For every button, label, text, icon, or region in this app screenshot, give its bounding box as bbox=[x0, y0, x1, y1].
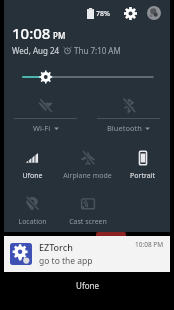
button[interactable]: Hidden notification bbox=[8, 232, 166, 236]
staticText: Wi-Fi bbox=[33, 123, 51, 133]
button[interactable]: Ufone bbox=[4, 144, 60, 188]
button[interactable]: Airplane mode bbox=[60, 144, 115, 188]
button[interactable]: Cast screen bbox=[60, 190, 115, 232]
staticText: Location bbox=[18, 217, 47, 227]
button[interactable]: Settings bbox=[120, 3, 140, 23]
staticText: go to the app bbox=[39, 255, 93, 267]
staticText: 10:08 PM bbox=[135, 240, 164, 249]
button[interactable]: Brightness bbox=[4, 67, 170, 87]
staticText: PM bbox=[53, 30, 66, 41]
button[interactable]: Location bbox=[4, 190, 60, 232]
staticText: Bluetooth bbox=[107, 123, 142, 133]
staticText: EZTorch bbox=[39, 241, 73, 253]
button[interactable]: Portrait bbox=[115, 144, 170, 188]
staticText: Ufone bbox=[22, 171, 43, 181]
button[interactable]: EZTorch bbox=[4, 236, 170, 272]
staticText: Portrait bbox=[130, 171, 155, 181]
staticText: Cast screen bbox=[69, 217, 107, 227]
staticText: Wed, Aug 24 bbox=[12, 45, 60, 56]
staticText: 10:08 bbox=[12, 23, 51, 43]
staticText: Ufone bbox=[76, 280, 99, 291]
staticText: 78% bbox=[96, 9, 110, 19]
button[interactable]: Wi-Fi bbox=[4, 93, 87, 141]
button[interactable]: User account bbox=[144, 3, 164, 23]
button[interactable]: Bluetooth bbox=[87, 93, 170, 141]
staticText: Airplane mode bbox=[63, 171, 112, 181]
button[interactable]: Battery 78 percent bbox=[85, 6, 112, 21]
staticText: Thu 7:10 AM bbox=[74, 45, 121, 56]
